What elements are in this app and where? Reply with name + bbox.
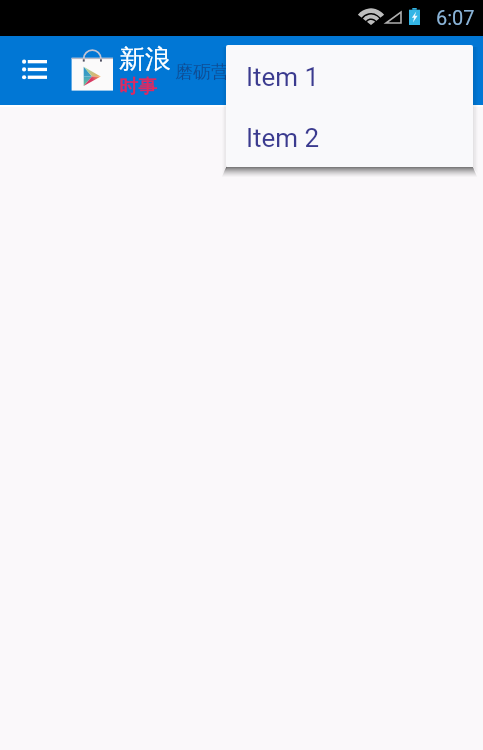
staticText: 6:07	[436, 6, 475, 29]
staticText: 新浪	[119, 43, 171, 76]
staticText: 磨砺营	[175, 61, 229, 84]
staticText: 时事	[119, 75, 157, 99]
button[interactable]: Item 2	[226, 106, 473, 167]
staticText: Item 2	[246, 123, 320, 153]
button[interactable]: Menu	[10, 48, 59, 92]
staticText: Item 1	[246, 62, 320, 92]
button[interactable]: Item 1	[226, 45, 473, 106]
button[interactable]: Google Play	[68, 46, 116, 94]
